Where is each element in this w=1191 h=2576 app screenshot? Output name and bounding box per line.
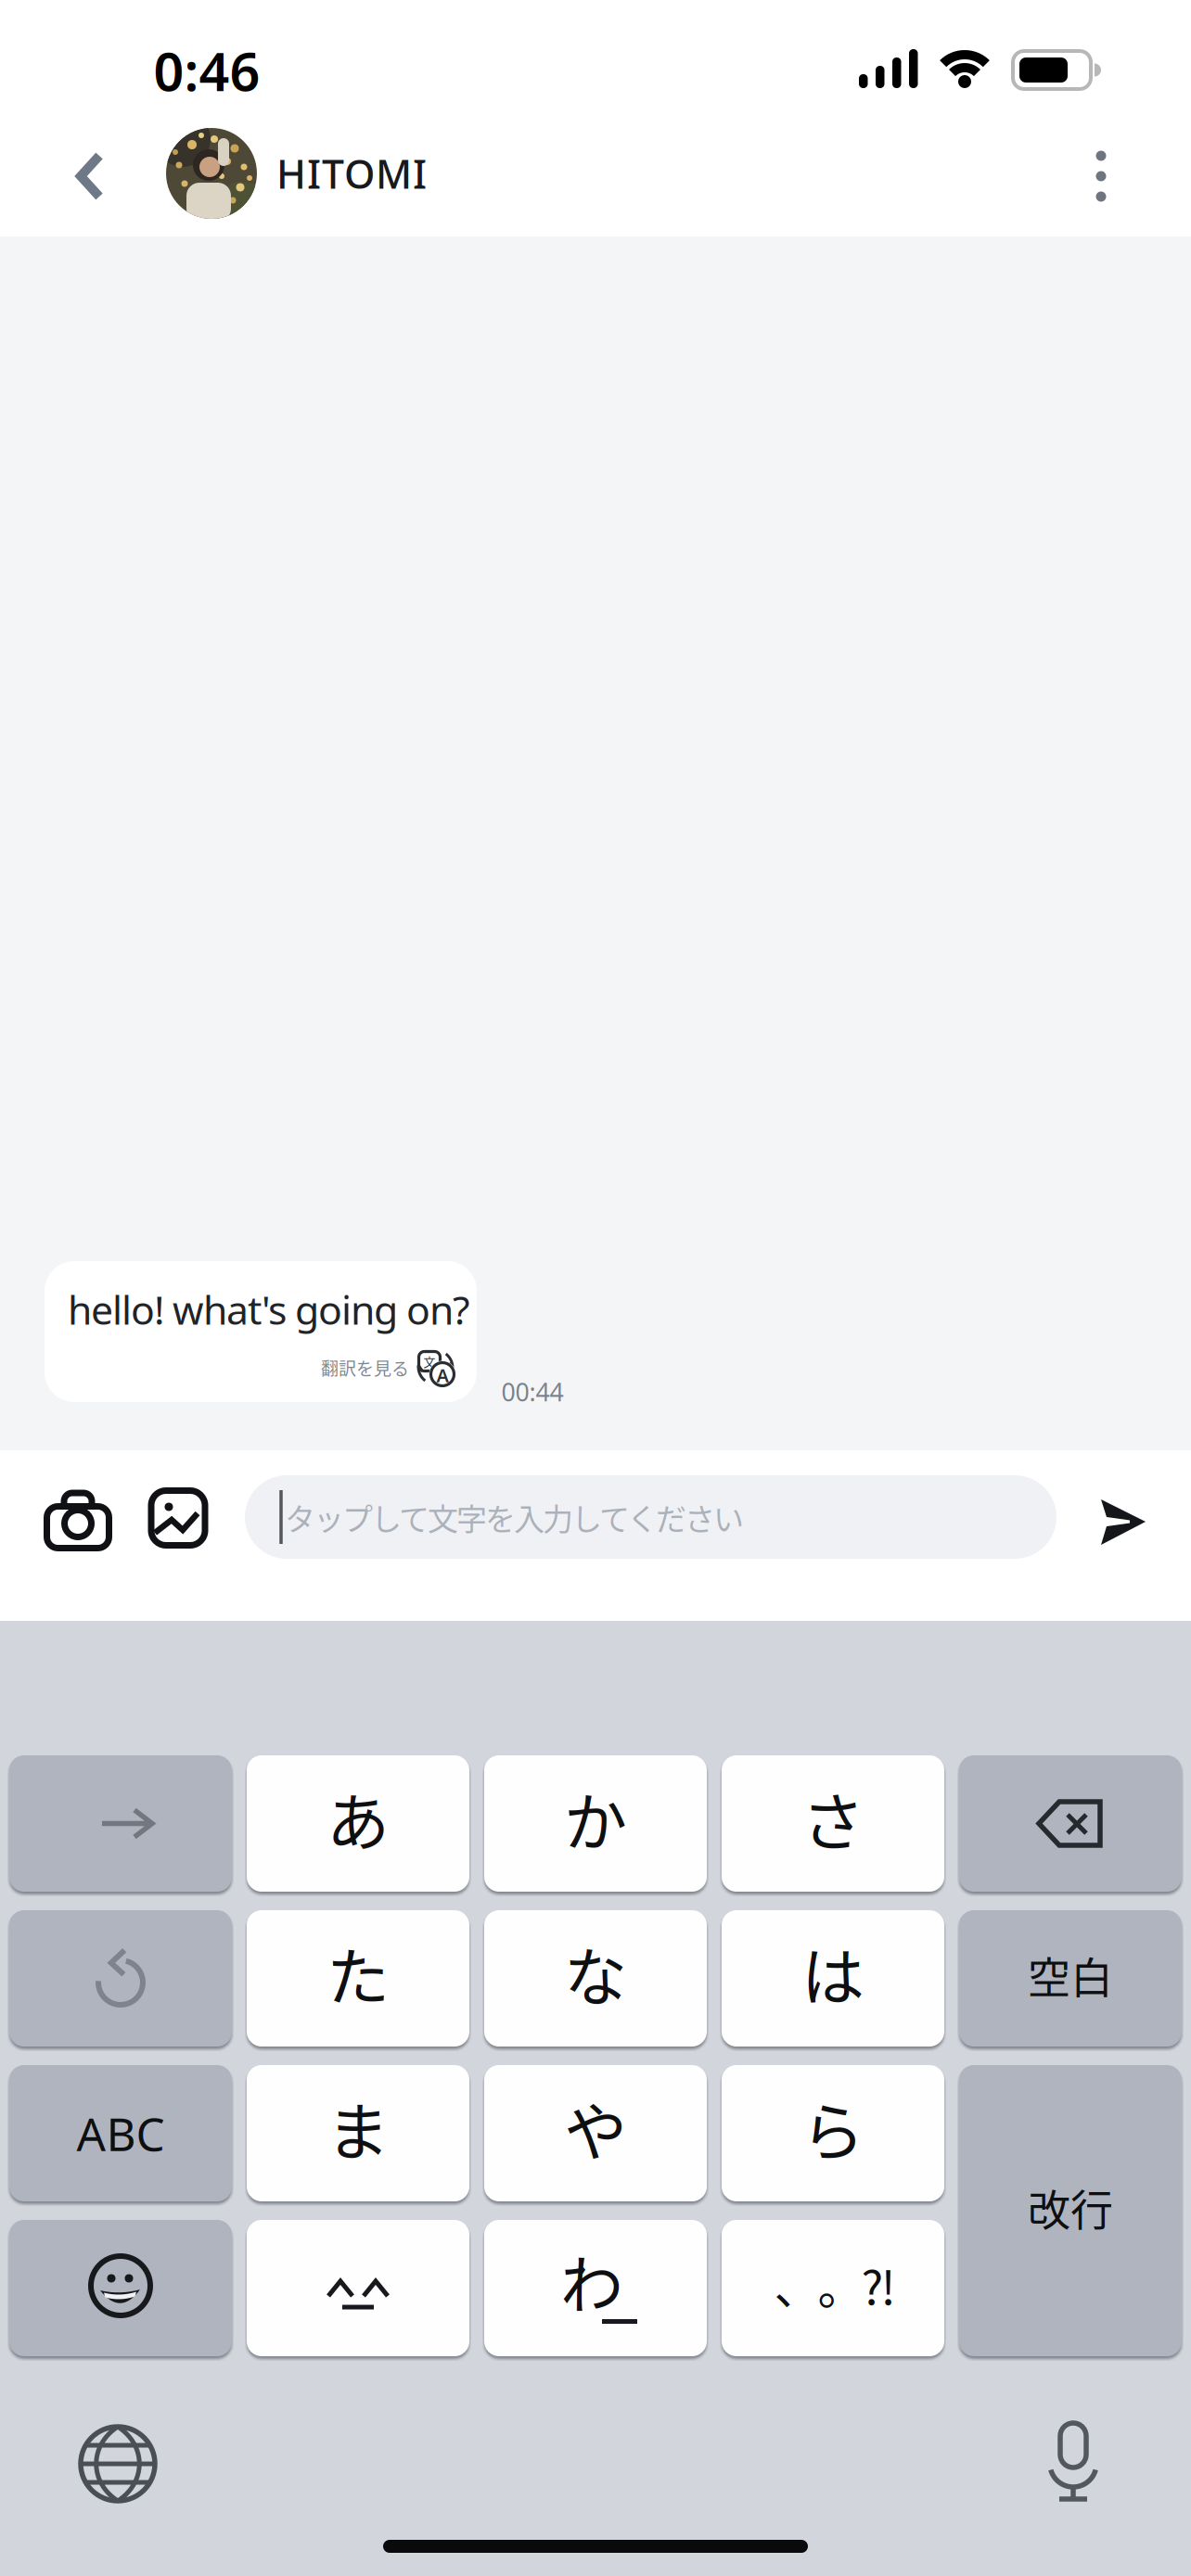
staticText: わ [560,2235,623,2326]
button[interactable]: は [722,1910,944,2047]
button[interactable] [166,128,257,219]
button[interactable]: さ [722,1755,944,1892]
staticText: タップして文字を入力してください [285,1495,744,1539]
button[interactable] [36,1476,120,1560]
staticText: hello! what's going on? [68,1283,470,1336]
staticText: は [801,1927,864,2019]
button[interactable] [1022,2411,1124,2513]
button[interactable] [1086,1486,1160,1560]
staticText: HITOMI [276,147,427,200]
button[interactable]: あ [247,1755,469,1892]
button[interactable]: ら [722,2065,944,2201]
staticText: あ [327,1772,390,1864]
staticText: ま [327,2082,390,2173]
button[interactable]: 空白 [959,1910,1182,2047]
staticText: 改行 [1028,2176,1113,2238]
button[interactable]: 、。?! [722,2220,944,2356]
button[interactable] [136,1476,220,1560]
button[interactable] [959,1755,1182,1892]
staticText: ABC [77,2103,165,2164]
button[interactable]: 翻訳を見る [131,1355,409,1380]
staticText: 00:44 [501,1375,563,1408]
staticText: 、。?! [774,2251,896,2318]
button[interactable] [61,148,117,204]
staticText: さ [801,1772,864,1864]
button[interactable]: な [484,1910,707,2047]
staticText: た [327,1927,390,2019]
button[interactable] [1068,148,1123,204]
staticText: か [564,1772,627,1864]
button[interactable]: タップして文字を入力してください [245,1475,1057,1559]
button[interactable]: わ [484,2220,707,2356]
staticText: 文 [423,1353,435,1370]
button[interactable]: か [484,1755,707,1892]
staticText: A [436,1363,448,1387]
staticText: ら [801,2082,864,2173]
staticText: 0:46 [154,35,260,106]
button[interactable] [9,1755,232,1892]
staticText: な [564,1927,627,2019]
button[interactable]: 改行 [959,2065,1182,2356]
staticText: や [564,2082,627,2173]
staticText: 翻訳を見る [321,1355,409,1380]
button[interactable] [247,2220,469,2356]
button[interactable]: ABC [9,2065,232,2201]
button[interactable] [9,2220,232,2356]
button[interactable]: や [484,2065,707,2201]
button[interactable] [67,2413,169,2515]
button[interactable] [9,1910,232,2047]
button[interactable]: ま [247,2065,469,2201]
staticText: 空白 [1028,1944,1113,2006]
button[interactable]: た [247,1910,469,2047]
